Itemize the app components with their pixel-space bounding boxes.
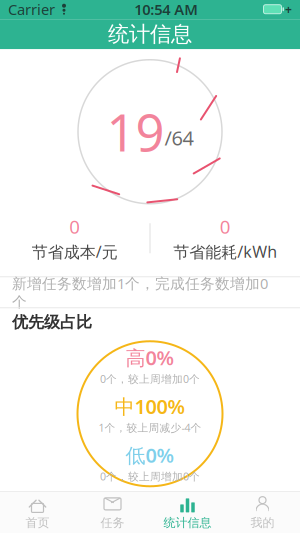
staticText: 中100% bbox=[114, 393, 185, 419]
staticText: 节省成本/元 bbox=[32, 241, 118, 262]
staticText: 0个，较上周增加0个 bbox=[100, 469, 200, 483]
staticText: 低0% bbox=[125, 442, 174, 468]
staticText: 统计信息 bbox=[108, 21, 192, 47]
button[interactable]: 统计信息 bbox=[150, 492, 225, 533]
staticText: 0 bbox=[69, 214, 80, 239]
button[interactable]: 首页 bbox=[0, 492, 75, 533]
staticText: 统计信息 bbox=[163, 515, 211, 530]
staticText: 1个，较上周减少-4个 bbox=[98, 420, 201, 435]
button[interactable]: 任务 bbox=[75, 492, 150, 533]
staticText: 19 bbox=[106, 98, 164, 165]
staticText: 我的 bbox=[250, 515, 274, 530]
staticText: + bbox=[285, 1, 292, 17]
staticText: 节省能耗/kWh bbox=[173, 241, 277, 262]
staticText: 任务 bbox=[100, 515, 124, 530]
staticText: 首页 bbox=[25, 515, 49, 530]
staticText: 10:54 AM bbox=[134, 0, 198, 19]
staticText: 优先级占比 bbox=[12, 312, 92, 332]
staticText: 0个，较上周增加0个 bbox=[100, 372, 200, 386]
button[interactable]: 我的 bbox=[225, 492, 300, 533]
staticText: 新增任务数增加1个，完成任务数增加0个 bbox=[12, 273, 268, 311]
staticText: Carrier bbox=[8, 0, 55, 19]
staticText: /64 bbox=[164, 124, 193, 151]
staticText: 高0% bbox=[125, 344, 174, 371]
staticText: 0 bbox=[220, 214, 231, 239]
